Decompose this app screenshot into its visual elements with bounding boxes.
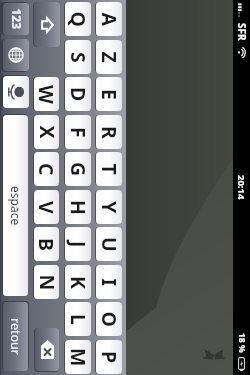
button[interactable]: F [65, 115, 91, 149]
button[interactable]: Shift [34, 2, 60, 47]
button[interactable]: L [65, 302, 91, 336]
button[interactable]: P [96, 340, 122, 374]
button[interactable]: Dictation [3, 76, 29, 108]
staticText: E [96, 89, 122, 100]
staticText: I [96, 278, 122, 286]
button[interactable]: Q [65, 2, 91, 36]
staticText: A [96, 12, 122, 26]
staticText: Q [65, 11, 91, 27]
button[interactable]: B [34, 227, 59, 261]
staticText: J [65, 241, 91, 248]
staticText: R [96, 126, 122, 139]
button[interactable]: T [96, 152, 122, 186]
button[interactable]: D [65, 77, 91, 111]
staticText: K [65, 276, 91, 289]
button[interactable]: S [65, 40, 91, 74]
staticText: U [96, 237, 122, 252]
button[interactable]: G [65, 152, 91, 186]
button[interactable]: Y [96, 190, 122, 224]
staticText: M [65, 348, 91, 367]
button[interactable]: A [96, 2, 122, 36]
button[interactable]: retour [3, 302, 28, 371]
button[interactable]: 123 [3, 3, 29, 35]
staticText: retour [7, 318, 24, 355]
staticText: X [34, 125, 59, 139]
staticText: D [65, 87, 91, 102]
button[interactable]: R [96, 115, 122, 149]
staticText: L [65, 314, 91, 325]
staticText: G [65, 162, 91, 177]
staticText: 18 % [236, 333, 248, 353]
button[interactable]: H [65, 190, 91, 224]
button[interactable]: Change keyboard language [3, 39, 29, 71]
button[interactable]: U [96, 227, 122, 261]
button[interactable]: Z [96, 40, 122, 74]
staticText: Z [96, 51, 122, 63]
button[interactable]: W [34, 77, 59, 111]
button[interactable]: K [65, 265, 91, 299]
button[interactable]: N [34, 265, 59, 299]
staticText: H [65, 200, 91, 215]
button[interactable]: X [34, 115, 59, 149]
staticText: Y [96, 201, 122, 214]
staticText: N [34, 274, 59, 290]
staticText: P [96, 351, 122, 364]
staticText: S [65, 52, 91, 63]
button[interactable]: J [65, 227, 91, 261]
staticText: B [34, 238, 59, 251]
button[interactable]: M [65, 340, 91, 374]
staticText: O [96, 311, 122, 327]
staticText: 20:14 [235, 175, 248, 200]
staticText: F [65, 127, 91, 138]
staticText: 123 [8, 8, 24, 29]
staticText: V [34, 201, 59, 214]
staticText: SFR [235, 23, 249, 41]
button[interactable]: O [96, 302, 122, 336]
button[interactable]: Backspace [35, 328, 59, 371]
staticText: espace [8, 186, 24, 226]
staticText: T [96, 163, 122, 175]
button[interactable]: espace [3, 115, 28, 296]
button[interactable]: C [34, 152, 59, 186]
button[interactable]: I [96, 265, 122, 299]
staticText: W [34, 85, 59, 104]
button[interactable]: V [34, 190, 59, 224]
button[interactable]: E [96, 77, 122, 111]
staticText: C [34, 163, 59, 176]
